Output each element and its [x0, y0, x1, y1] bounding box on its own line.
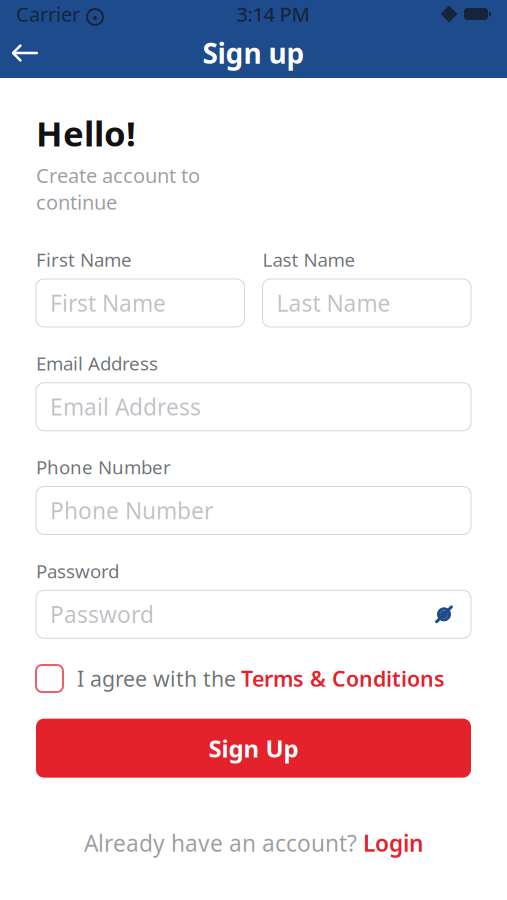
staticText: Email Address [50, 392, 201, 422]
staticText: Last Name [276, 288, 390, 318]
staticText: Password [50, 599, 154, 629]
button[interactable]: I agree with the [36, 660, 471, 697]
staticText: First Name [50, 288, 166, 318]
button[interactable]: Sign Up [36, 719, 471, 778]
staticText: Phone Number [36, 455, 171, 479]
staticText: Phone Number [50, 495, 213, 526]
staticText: Already have an account? [84, 828, 357, 858]
staticText: Sign Up [208, 732, 298, 764]
button[interactable]: Already have an account? [84, 822, 423, 864]
staticText: 3:14 PM [236, 1, 309, 27]
staticText: Sign up [202, 34, 304, 72]
button[interactable]: Show password [431, 601, 457, 627]
staticText: Last Name [262, 247, 355, 272]
staticText: Email Address [36, 351, 158, 376]
staticText: Hello! [36, 110, 136, 156]
staticText: Carrier [16, 1, 80, 27]
staticText: First Name [36, 247, 132, 272]
staticText: I agree with the [77, 664, 236, 693]
staticText: Terms & Conditions [241, 664, 445, 693]
staticText: Password [36, 558, 119, 583]
button[interactable]: Back [0, 31, 50, 75]
staticText: Login [363, 828, 423, 858]
staticText: Create account to continue [36, 162, 200, 215]
